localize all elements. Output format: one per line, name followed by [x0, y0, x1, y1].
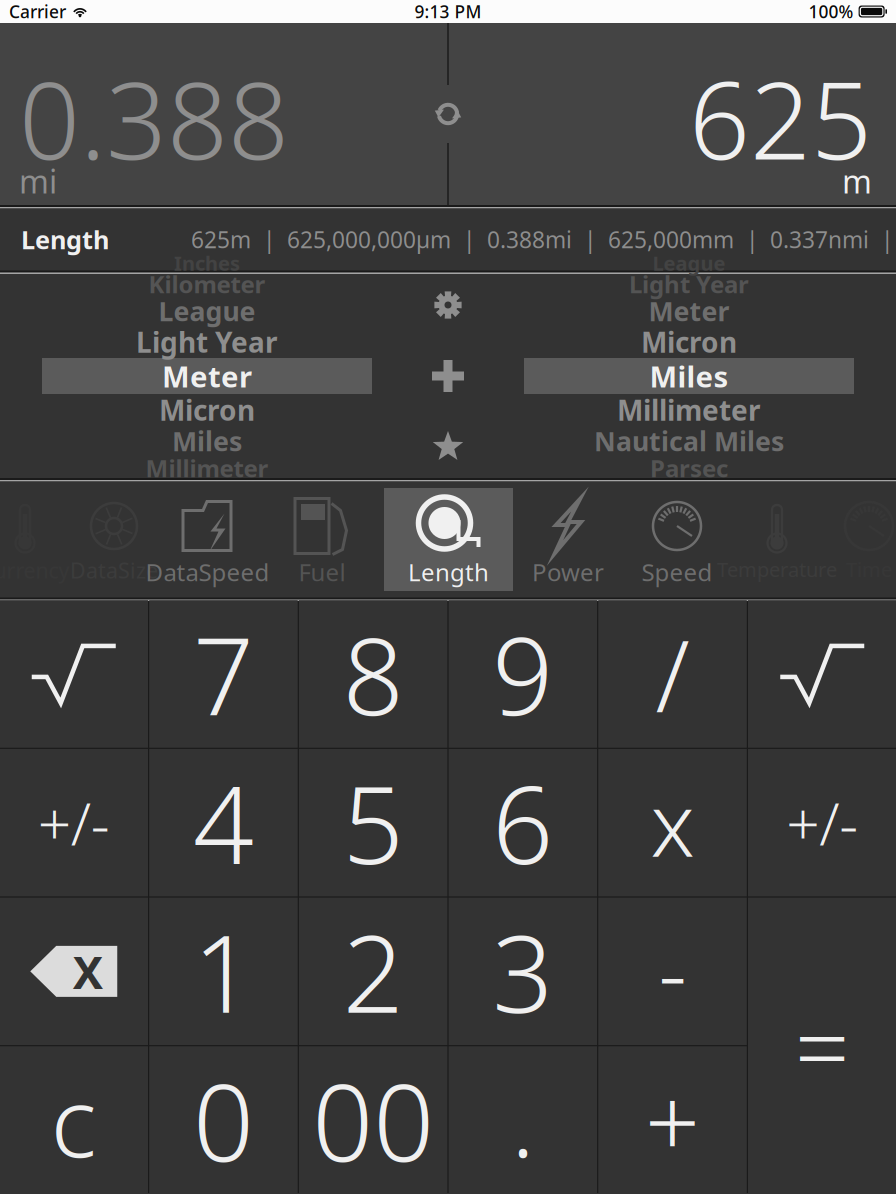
button[interactable]: 3 — [449, 898, 597, 1045]
staticText: mi — [19, 160, 57, 202]
button[interactable]: 6 — [449, 749, 597, 896]
staticText: Meter — [648, 293, 729, 329]
staticText: 100% — [809, 0, 854, 23]
staticText: 7 — [193, 603, 254, 745]
button[interactable]: 4 — [149, 749, 298, 896]
staticText: Nautical Miles — [594, 423, 784, 459]
button[interactable]: Divide — [598, 600, 747, 748]
button[interactable]: DataSpeed — [155, 488, 260, 591]
staticText: Millimeter — [617, 391, 761, 429]
staticText: Micron — [641, 323, 737, 361]
staticText: 3 — [492, 900, 553, 1042]
staticText: Kilometer — [148, 268, 265, 300]
button[interactable]: Square root — [0, 600, 148, 748]
staticText: 9 — [492, 603, 553, 745]
button[interactable]: Plus minus — [748, 749, 896, 896]
button[interactable]: Power — [513, 488, 623, 591]
button[interactable]: Clear — [0, 1046, 148, 1194]
staticText: / — [655, 608, 689, 739]
staticText: Meter — [162, 356, 252, 395]
staticText: - — [658, 913, 686, 1030]
button[interactable]: 9 — [449, 600, 597, 748]
staticText: Speed — [641, 556, 712, 588]
staticText: 2 — [343, 900, 404, 1042]
staticText: Nautical Miles — [136, 476, 278, 502]
staticText: 625m | 625,000,000µm | 0.388mi | 625,000… — [191, 224, 896, 254]
staticText: +/- — [38, 784, 110, 862]
button[interactable]: DataSize — [73, 488, 155, 591]
button[interactable]: Minus — [598, 898, 747, 1045]
staticText: . — [511, 1056, 534, 1184]
staticText: DataSize — [70, 556, 158, 584]
button[interactable]: 1 — [149, 898, 298, 1045]
button[interactable]: Double zero — [299, 1046, 447, 1194]
button[interactable]: Settings — [414, 274, 482, 336]
button[interactable]: 5 — [299, 749, 447, 896]
staticText: Parsec — [650, 452, 728, 484]
staticText: Light Year — [136, 323, 278, 361]
staticText: Miles — [172, 423, 242, 459]
staticText: 00 — [312, 1049, 434, 1191]
staticText: 9:13 PM — [414, 0, 481, 23]
staticText: Carrier — [9, 0, 66, 23]
staticText: m — [842, 160, 872, 202]
staticText: 5 — [343, 752, 404, 893]
staticText: x — [650, 764, 694, 881]
staticText: 0 — [193, 1049, 254, 1191]
staticText: Miles — [649, 356, 728, 395]
button[interactable]: Fuel — [260, 488, 384, 591]
button[interactable]: Square root — [748, 600, 896, 748]
staticText: Yard — [666, 476, 712, 502]
staticText: +/- — [786, 784, 858, 862]
staticText: League — [652, 250, 725, 276]
button[interactable]: Swap units — [418, 84, 478, 144]
staticText: 4 — [193, 752, 254, 893]
staticText: 0.388 — [19, 47, 289, 189]
button[interactable]: Length — [384, 488, 513, 591]
staticText: 625 — [689, 47, 872, 189]
button[interactable]: Multiply — [598, 749, 747, 896]
button[interactable]: Speed — [623, 488, 731, 591]
staticText: = — [795, 982, 850, 1109]
staticText: X — [73, 941, 103, 1001]
staticText: Length — [408, 556, 489, 588]
staticText: Fuel — [298, 556, 345, 588]
staticText: Inches — [174, 250, 240, 276]
staticText: League — [158, 293, 255, 329]
staticText: + — [645, 1056, 700, 1184]
button[interactable]: 0 — [149, 1046, 298, 1194]
button[interactable]: Decimal point — [449, 1046, 597, 1194]
button[interactable]: Equals — [748, 898, 896, 1194]
button[interactable]: Plus — [598, 1046, 747, 1194]
staticText: 8 — [343, 603, 404, 745]
button[interactable]: 8 — [299, 600, 447, 748]
staticText: Millimeter — [145, 452, 268, 484]
button[interactable]: Plus minus — [0, 749, 148, 896]
staticText: Length — [21, 223, 109, 256]
button[interactable]: Backspace — [0, 898, 148, 1045]
staticText: c — [51, 1056, 97, 1184]
staticText: Micron — [159, 391, 255, 429]
button[interactable]: 2 — [299, 898, 447, 1045]
button[interactable]: Add unit — [414, 345, 482, 407]
button[interactable]: Favorites — [414, 416, 482, 478]
staticText: 6 — [492, 752, 553, 893]
button[interactable]: 7 — [149, 600, 298, 748]
staticText: DataSpeed — [145, 556, 269, 588]
staticText: Power — [532, 556, 604, 588]
staticText: Light Year — [629, 268, 749, 300]
staticText: 1 — [193, 900, 254, 1042]
